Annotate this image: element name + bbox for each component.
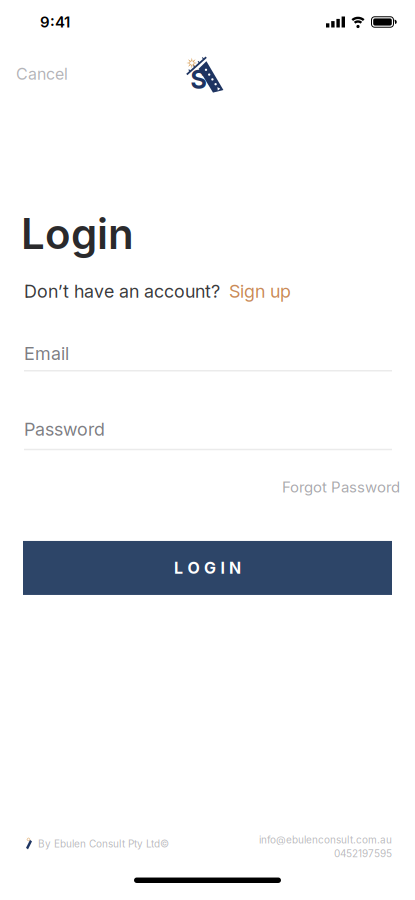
staticText: 9:41 [40,13,70,31]
staticText: Sign up [229,280,291,302]
button[interactable]: Sign up [229,280,291,302]
staticText: By Ebulen Consult Pty Ltd© [38,838,169,850]
staticText: Login [21,209,134,258]
button[interactable]: LOGIN [23,541,392,595]
staticText: Don’t have an account? [24,280,225,302]
button[interactable]: Cancel [16,65,68,83]
staticText: Password [24,418,105,440]
staticText: Cancel [16,65,68,83]
staticText: info@ebulenconsult.com.au [259,834,392,846]
button[interactable]: Forgot Password [282,478,400,496]
staticText: Email [24,343,69,364]
staticText: Forgot Password [282,478,400,496]
staticText: 0452197595 [334,848,392,859]
staticText: S [190,65,206,94]
staticText: LOGIN [174,558,241,577]
